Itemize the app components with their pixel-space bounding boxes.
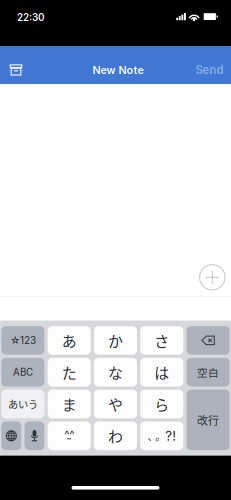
button[interactable]: 空白 [187,358,230,386]
button[interactable]: Emoticons [48,421,91,450]
staticText: か [108,330,123,351]
button[interactable]: ☆123 [1,326,44,355]
staticText: 改行 [197,412,219,428]
staticText: ?! [165,428,176,444]
staticText: わ [108,425,123,447]
staticText: あ [62,330,77,351]
button[interactable]: Next keyboard [1,421,21,450]
staticText: た [62,361,77,383]
button[interactable]: は [140,358,183,386]
button[interactable]: 、。 [140,421,183,450]
button[interactable]: や [94,390,137,418]
staticText: ま [62,393,77,415]
button[interactable]: あ [48,326,91,355]
button[interactable]: か [94,326,137,355]
button[interactable]: Add [193,258,231,296]
staticText: ABC [13,366,33,378]
button[interactable]: た [48,358,91,386]
staticText: New Note [92,63,143,77]
button[interactable]: 改行 [187,390,230,450]
staticText: は [154,361,169,383]
button[interactable]: わ [94,421,137,450]
staticText: ^^ [64,428,74,442]
staticText: な [108,361,123,383]
button[interactable]: さ [140,326,183,355]
button[interactable]: Archive [0,46,33,84]
staticText: や [108,393,123,415]
button[interactable]: な [94,358,137,386]
staticText: 、。 [147,428,165,443]
staticText: Send [195,63,223,77]
staticText: さ [154,330,169,351]
staticText: 空白 [197,364,219,380]
button[interactable]: ら [140,390,183,418]
staticText: ら [154,393,169,415]
staticText: あいう [8,397,38,411]
button[interactable]: ま [48,390,91,418]
staticText: ☆123 [10,334,36,346]
button[interactable]: あいう [1,390,44,418]
button[interactable]: Dictation [24,421,44,450]
staticText: 22:30 [17,11,45,23]
button[interactable]: Delete [187,326,230,355]
button[interactable]: Send [192,46,231,84]
button[interactable]: ABC [1,358,44,386]
